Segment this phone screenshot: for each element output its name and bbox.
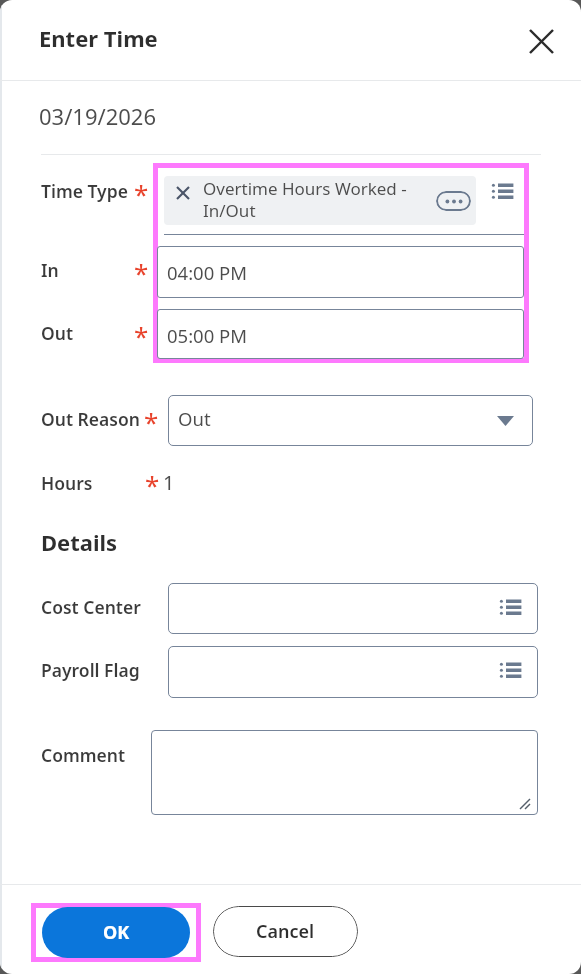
staticText: Cost Center bbox=[41, 595, 141, 619]
button[interactable]: Close bbox=[519, 19, 563, 63]
staticText: Out bbox=[178, 406, 211, 431]
staticText: Time Type bbox=[41, 179, 128, 203]
button[interactable]: Cancel bbox=[213, 906, 358, 957]
button[interactable]: More bbox=[436, 191, 471, 211]
button[interactable]: Comment bbox=[151, 730, 538, 815]
staticText: * bbox=[145, 467, 160, 502]
button[interactable]: 04:00 PM bbox=[157, 246, 524, 298]
staticText: * bbox=[144, 404, 159, 439]
staticText: 1 bbox=[163, 469, 175, 496]
staticText: Comment bbox=[41, 743, 126, 767]
staticText: Details bbox=[41, 527, 118, 557]
button[interactable]: Out bbox=[168, 395, 533, 446]
staticText: Cancel bbox=[256, 919, 315, 944]
button[interactable]: Cost Center bbox=[168, 583, 538, 634]
staticText: Hours bbox=[41, 471, 93, 495]
staticText: 04:00 PM bbox=[167, 260, 248, 285]
button[interactable]: Payroll Flag bbox=[168, 646, 538, 698]
staticText: 05:00 PM bbox=[167, 323, 248, 348]
staticText: * bbox=[134, 318, 149, 353]
staticText: Overtime Hours Worked - In/Out bbox=[203, 177, 407, 222]
button[interactable]: 05:00 PM bbox=[157, 309, 524, 359]
staticText: In bbox=[41, 258, 59, 282]
button[interactable]: OK bbox=[42, 907, 190, 958]
staticText: * bbox=[134, 255, 149, 290]
button[interactable]: Select time type bbox=[491, 183, 514, 199]
staticText: * bbox=[134, 176, 149, 211]
staticText: 03/19/2026 bbox=[39, 101, 157, 131]
button[interactable]: Overtime Hours Worked - In/Out bbox=[164, 176, 476, 225]
staticText: OK bbox=[103, 920, 130, 945]
staticText: Enter Time bbox=[39, 23, 158, 53]
staticText: Out bbox=[41, 321, 74, 345]
staticText: Payroll Flag bbox=[41, 658, 140, 682]
staticText: Out Reason bbox=[41, 407, 140, 431]
